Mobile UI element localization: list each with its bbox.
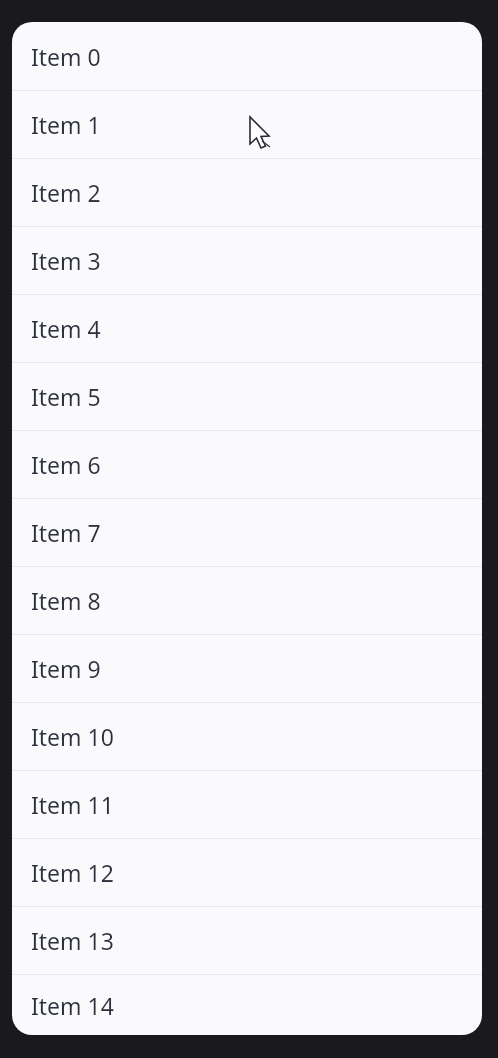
staticText: Item 0 [31, 41, 101, 72]
staticText: Item 13 [31, 925, 114, 956]
staticText: Item 7 [31, 517, 101, 548]
staticText: Item 6 [31, 449, 101, 480]
button[interactable]: Item 14 [12, 974, 482, 1035]
button[interactable]: Item 5 [12, 362, 482, 430]
button[interactable]: Item 7 [12, 498, 482, 566]
button[interactable]: Item 10 [12, 702, 482, 770]
staticText: Item 10 [31, 721, 114, 752]
button[interactable]: Item 3 [12, 226, 482, 294]
button[interactable]: Item 0 [12, 22, 482, 90]
staticText: Item 3 [31, 245, 101, 276]
button[interactable]: Item 6 [12, 430, 482, 498]
staticText: Item 14 [31, 990, 114, 1021]
staticText: Item 11 [31, 789, 114, 820]
staticText: Item 12 [31, 857, 114, 888]
staticText: Item 5 [31, 381, 101, 412]
button[interactable]: Item 9 [12, 634, 482, 702]
staticText: Item 9 [31, 653, 101, 684]
button[interactable]: Item 2 [12, 158, 482, 226]
button[interactable]: Item 4 [12, 294, 482, 362]
button[interactable]: Item 12 [12, 838, 482, 906]
staticText: Item 2 [31, 177, 101, 208]
staticText: Item 8 [31, 585, 101, 616]
staticText: Item 4 [31, 313, 101, 344]
button[interactable]: Item 11 [12, 770, 482, 838]
staticText: Item 1 [31, 109, 101, 140]
button[interactable]: Item 1 [12, 90, 482, 158]
button[interactable]: Item 8 [12, 566, 482, 634]
button[interactable]: Item 13 [12, 906, 482, 974]
